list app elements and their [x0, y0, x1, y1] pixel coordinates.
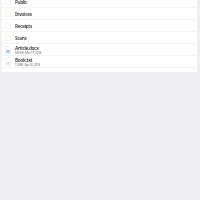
staticText: Article.docx: [15, 45, 39, 51]
button[interactable]: Public: [0, 0, 197, 8]
button[interactable]: Receipts: [0, 20, 197, 32]
button[interactable]: Scans: [0, 32, 197, 44]
staticText: 543 KB · Mar 17, 2018: [15, 51, 42, 55]
staticText: Invoices: [15, 11, 32, 17]
button[interactable]: Book.txt: [0, 56, 197, 68]
staticText: 12 MB · Apr 26, 2018: [15, 63, 41, 67]
button[interactable]: Article.docx: [0, 44, 197, 56]
staticText: Scans: [15, 35, 27, 41]
button[interactable]: Invoices: [0, 8, 197, 20]
staticText: Public: [15, 0, 28, 5]
staticText: Receipts: [15, 23, 33, 29]
staticText: Book.txt: [15, 57, 33, 63]
